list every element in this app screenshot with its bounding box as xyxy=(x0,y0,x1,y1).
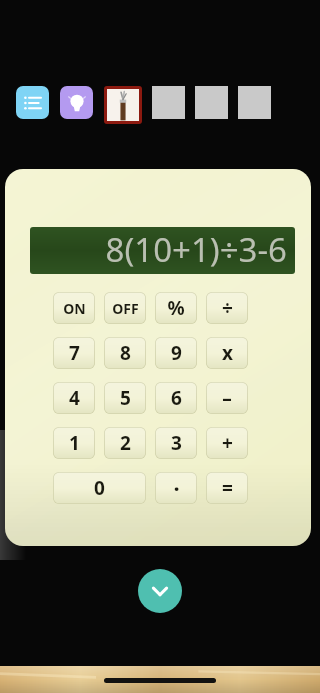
button[interactable]: Brush tool xyxy=(107,89,139,121)
staticText: 8 xyxy=(120,340,131,366)
staticText: ON xyxy=(63,299,86,318)
staticText: x xyxy=(222,340,233,366)
staticText: = xyxy=(222,475,233,501)
button[interactable]: 0 xyxy=(53,472,146,504)
button[interactable]: 4 xyxy=(53,382,95,414)
staticText: 1 xyxy=(69,430,80,456)
button[interactable]: OFF xyxy=(104,292,146,324)
staticText: 3 xyxy=(171,430,182,456)
button[interactable]: 2 xyxy=(104,427,146,459)
button[interactable]: x xyxy=(206,337,248,369)
staticText: 9 xyxy=(171,340,182,366)
button[interactable]: + xyxy=(206,427,248,459)
button[interactable]: 9 xyxy=(155,337,197,369)
button[interactable]: % xyxy=(155,292,197,324)
button[interactable]: = xyxy=(206,472,248,504)
staticText: · xyxy=(173,473,180,503)
staticText: 5 xyxy=(120,385,131,411)
button[interactable]: List xyxy=(16,86,49,119)
staticText: 4 xyxy=(69,385,80,411)
staticText: 0 xyxy=(94,475,105,501)
staticText: ÷ xyxy=(222,295,233,321)
button[interactable]: Ideas xyxy=(60,86,93,119)
button[interactable]: 1 xyxy=(53,427,95,459)
button[interactable]: 6 xyxy=(155,382,197,414)
staticText: 6 xyxy=(171,385,182,411)
button[interactable]: Collapse xyxy=(138,569,182,613)
button[interactable]: 5 xyxy=(104,382,146,414)
staticText: 8(10+1)÷3-6 xyxy=(105,227,287,272)
staticText: 2 xyxy=(120,430,131,456)
button[interactable]: ON xyxy=(53,292,95,324)
button[interactable]: ÷ xyxy=(206,292,248,324)
button[interactable]: – xyxy=(206,382,248,414)
staticText: – xyxy=(222,385,232,411)
staticText: % xyxy=(167,295,185,321)
button[interactable]: 7 xyxy=(53,337,95,369)
staticText: OFF xyxy=(112,299,139,318)
button[interactable]: 8 xyxy=(104,337,146,369)
staticText: + xyxy=(222,430,233,456)
staticText: 7 xyxy=(69,340,80,366)
button[interactable]: · xyxy=(155,472,197,504)
button[interactable]: 3 xyxy=(155,427,197,459)
